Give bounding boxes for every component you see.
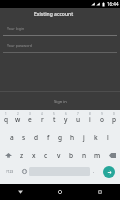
staticText: c bbox=[44, 151, 48, 160]
staticText: 7 bbox=[77, 112, 79, 116]
button[interactable]: g bbox=[54, 129, 66, 145]
staticText: v bbox=[57, 151, 61, 160]
button[interactable]: a bbox=[6, 129, 18, 145]
button[interactable]: n bbox=[78, 147, 91, 164]
staticText: j bbox=[83, 133, 85, 142]
button[interactable]: z bbox=[16, 147, 28, 164]
button[interactable]: 0 bbox=[108, 110, 120, 128]
staticText: u bbox=[76, 115, 81, 124]
staticText: a bbox=[10, 133, 14, 142]
staticText: 5 bbox=[53, 112, 55, 116]
button[interactable]: Your login bbox=[3, 21, 117, 36]
staticText: d bbox=[34, 133, 39, 142]
staticText: t bbox=[53, 115, 56, 124]
staticText: q bbox=[4, 115, 9, 124]
staticText: f bbox=[47, 133, 50, 142]
button[interactable]: ?123 bbox=[0, 164, 19, 179]
button[interactable]: f bbox=[42, 129, 54, 145]
button[interactable]: Backspace bbox=[104, 147, 120, 164]
staticText: z bbox=[20, 151, 24, 160]
staticText: 1 bbox=[5, 112, 7, 116]
button[interactable]: . bbox=[90, 164, 98, 179]
staticText: . bbox=[93, 168, 95, 175]
button[interactable]: Your password bbox=[3, 38, 117, 53]
staticText: 16:44 bbox=[107, 1, 119, 7]
staticText: p bbox=[112, 115, 117, 124]
staticText: h bbox=[70, 133, 75, 142]
button[interactable]: 3 bbox=[24, 110, 36, 128]
staticText: i bbox=[89, 115, 91, 124]
button[interactable]: 8 bbox=[84, 110, 96, 128]
staticText: g bbox=[58, 133, 63, 142]
staticText: 2 bbox=[17, 112, 19, 116]
button[interactable]: 4 bbox=[36, 110, 48, 128]
staticText: ?123 bbox=[6, 169, 14, 174]
button[interactable]: Sign in bbox=[0, 92, 120, 110]
staticText: k bbox=[94, 133, 98, 142]
staticText: Your login bbox=[7, 26, 25, 31]
staticText: w bbox=[15, 115, 21, 124]
button[interactable]: 6 bbox=[60, 110, 72, 128]
staticText: e bbox=[28, 115, 32, 124]
staticText: b bbox=[69, 151, 74, 160]
button[interactable]: c bbox=[40, 147, 52, 164]
staticText: l bbox=[107, 133, 109, 142]
staticText: 3 bbox=[29, 112, 31, 116]
staticText: Existing account bbox=[34, 11, 74, 18]
button[interactable]: Emoji bbox=[19, 164, 29, 179]
button[interactable]: l bbox=[102, 129, 114, 145]
button[interactable]: j bbox=[78, 129, 90, 145]
button[interactable]: v bbox=[52, 147, 65, 164]
button[interactable]: x bbox=[28, 147, 40, 164]
button[interactable]: 7 bbox=[72, 110, 84, 128]
staticText: Sign in bbox=[54, 99, 67, 104]
button[interactable]: s bbox=[18, 129, 30, 145]
button[interactable]: Back bbox=[0, 184, 40, 200]
button[interactable]: Recents bbox=[80, 184, 120, 200]
staticText: 9 bbox=[101, 112, 103, 116]
staticText: Your password bbox=[7, 43, 32, 48]
staticText: r bbox=[41, 115, 44, 124]
button[interactable]: h bbox=[66, 129, 78, 145]
staticText: 8 bbox=[89, 112, 91, 116]
button[interactable]: k bbox=[90, 129, 102, 145]
button[interactable]: 1 bbox=[0, 110, 12, 128]
button[interactable]: 9 bbox=[96, 110, 108, 128]
button[interactable]: 5 bbox=[48, 110, 60, 128]
button[interactable]: m bbox=[91, 147, 104, 164]
button[interactable]: Shift bbox=[0, 147, 16, 164]
button[interactable]: b bbox=[65, 147, 78, 164]
button[interactable]: d bbox=[30, 129, 42, 145]
staticText: s bbox=[22, 133, 26, 142]
button[interactable]: Enter bbox=[98, 164, 120, 179]
staticText: o bbox=[100, 115, 104, 124]
staticText: n bbox=[82, 151, 87, 160]
button[interactable]: Home bbox=[40, 184, 80, 200]
staticText: x bbox=[32, 151, 36, 160]
staticText: 0 bbox=[113, 112, 115, 116]
staticText: y bbox=[64, 115, 68, 124]
button[interactable]: 2 bbox=[12, 110, 24, 128]
staticText: m bbox=[94, 151, 101, 160]
staticText: 4 bbox=[41, 112, 43, 116]
staticText: 6 bbox=[65, 112, 67, 116]
